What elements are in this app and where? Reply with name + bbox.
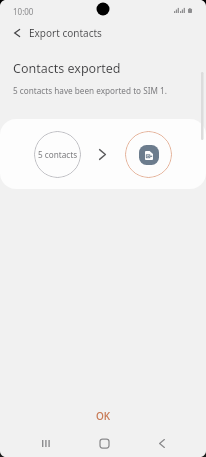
staticText: 10:00 — [13, 6, 34, 17]
staticText: OK — [96, 409, 111, 423]
button[interactable]: Recent apps — [28, 429, 64, 457]
button[interactable]: Navigate up — [3, 20, 30, 46]
staticText: 5 contacts have been exported to SIM 1. — [13, 85, 167, 96]
button[interactable]: Home — [86, 429, 122, 457]
button[interactable]: 5 contacts — [0, 119, 206, 189]
staticText: 5 contacts — [38, 149, 78, 160]
button[interactable]: Back — [144, 429, 180, 457]
staticText: Contacts exported — [13, 60, 121, 77]
staticText: Export contacts — [29, 26, 102, 40]
button[interactable]: OK — [76, 405, 130, 427]
